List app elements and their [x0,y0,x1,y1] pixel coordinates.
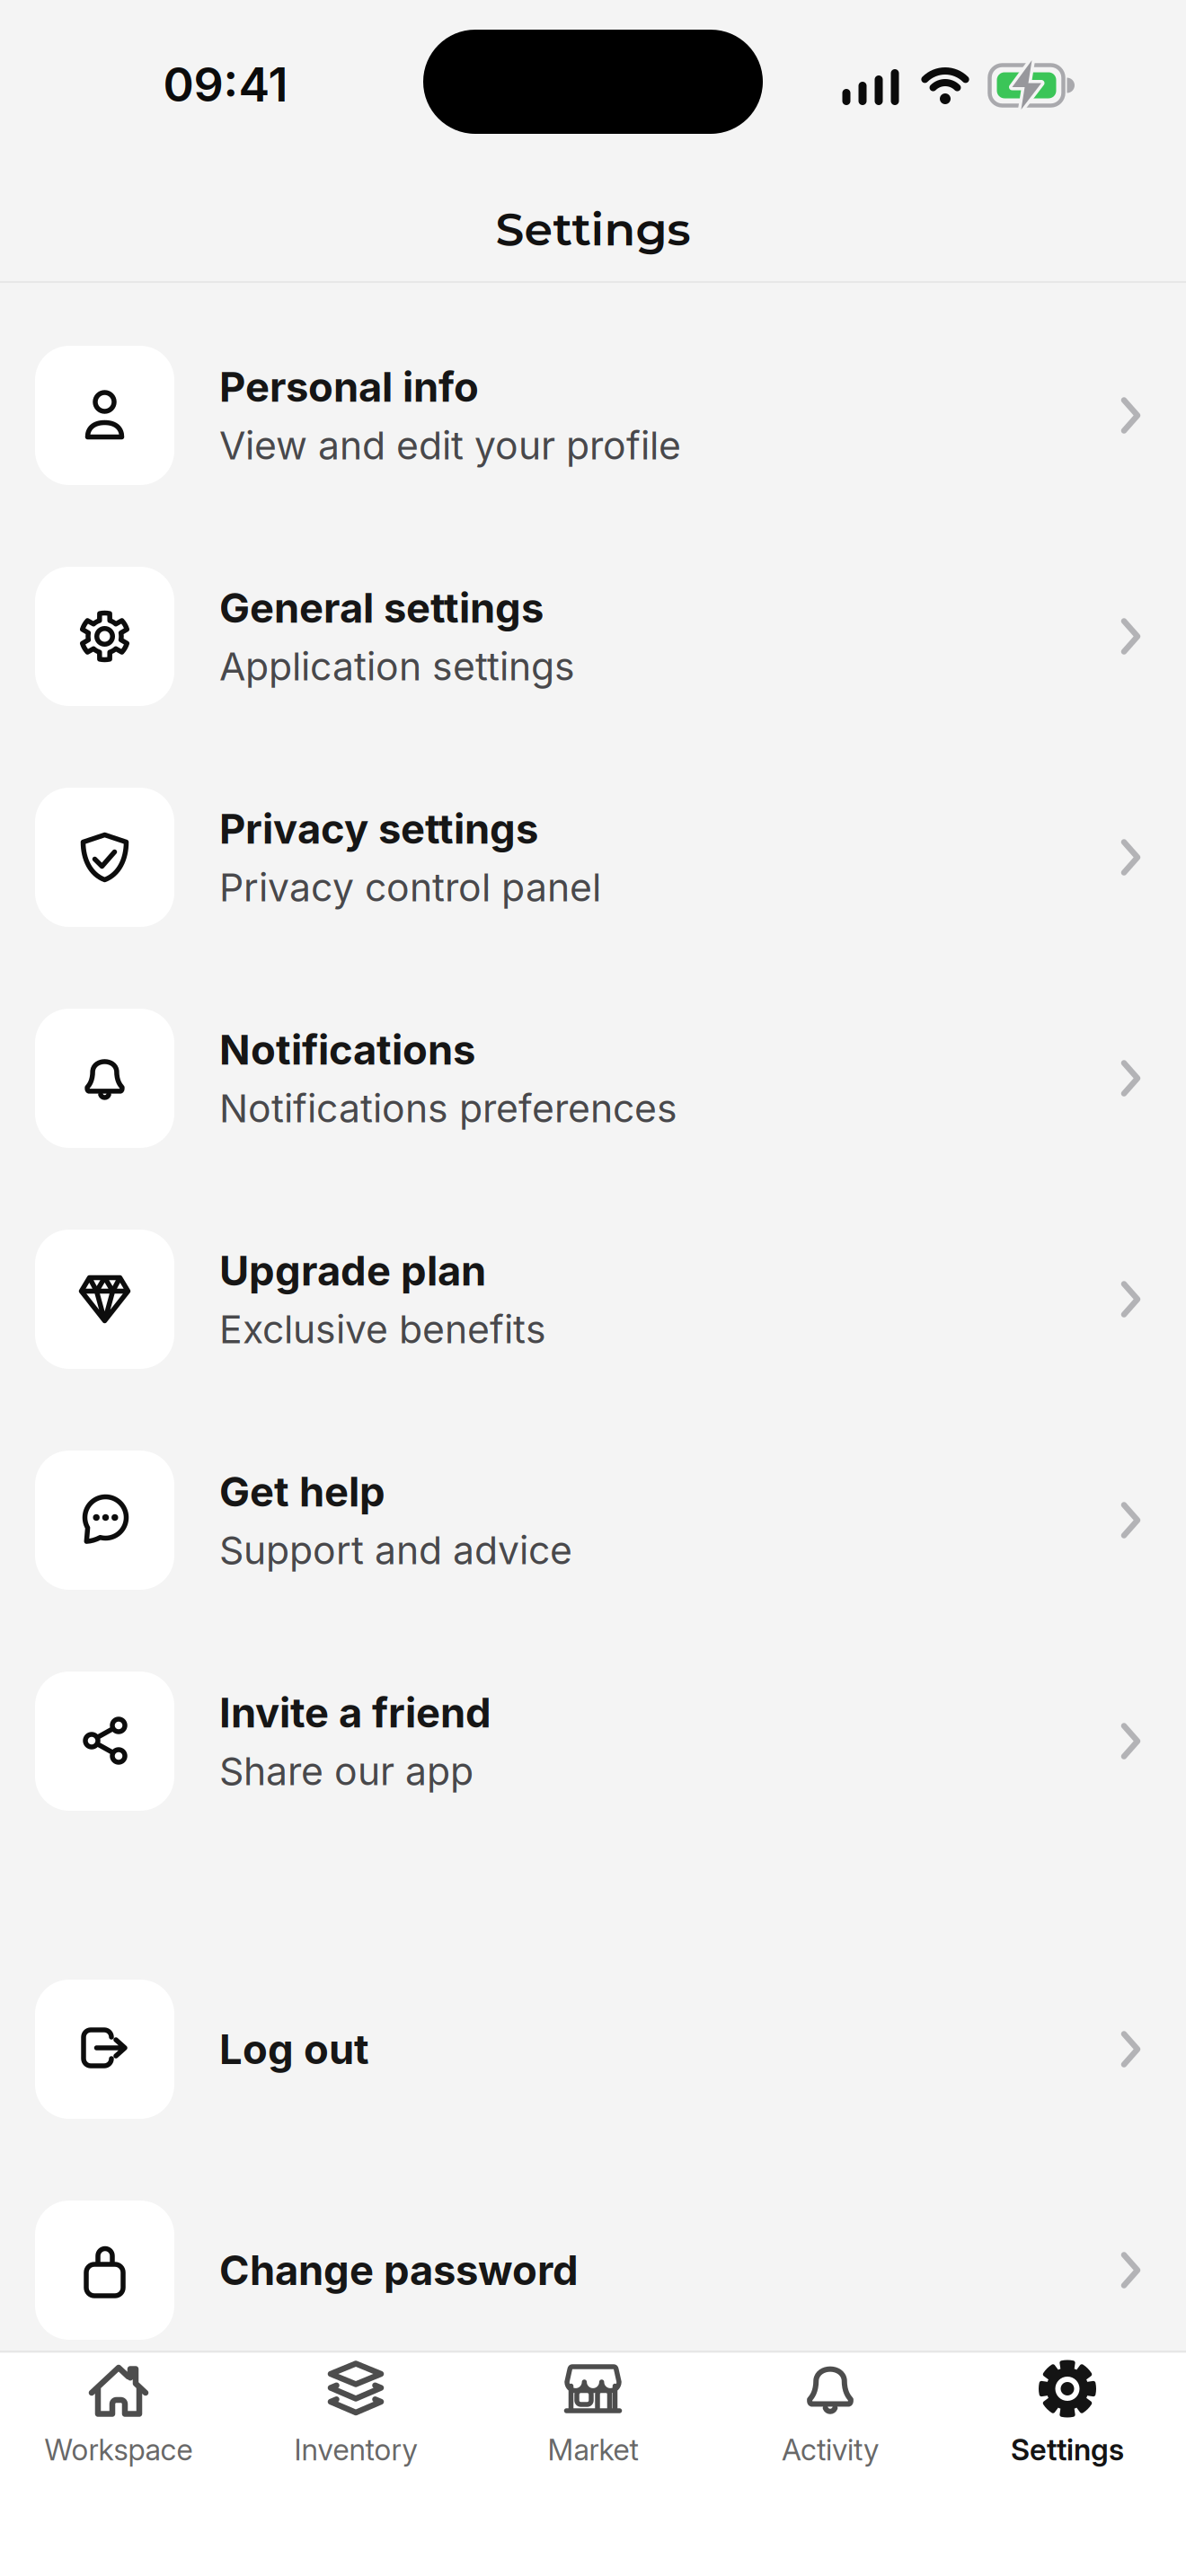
button[interactable]: Inventory [237,2359,474,2569]
staticText: Workspace [44,2432,193,2467]
staticText: Support and advice [219,1527,572,1573]
staticText: Notifications [219,1025,475,1074]
staticText: Exclusive benefits [219,1306,546,1352]
staticText: Share our app [219,1748,474,1794]
staticText: 09:41 [163,56,288,113]
button[interactable]: Notifications [0,1009,1186,1148]
button[interactable]: Settings [949,2359,1186,2569]
staticText: Privacy control panel [219,864,601,910]
staticText: View and edit your profile [219,422,681,469]
button[interactable]: General settings [0,567,1186,706]
button[interactable]: Upgrade plan [0,1230,1186,1369]
staticText: Upgrade plan [219,1246,486,1295]
button[interactable]: Activity [712,2359,949,2569]
staticText: Log out [219,2025,369,2074]
button[interactable]: Log out [0,1980,1186,2119]
staticText: Personal info [219,362,479,412]
staticText: Market [548,2432,638,2467]
staticText: Privacy settings [219,804,538,853]
staticText: General settings [219,583,544,633]
staticText: Application settings [219,643,575,690]
button[interactable]: Workspace [0,2359,237,2569]
staticText: Settings [496,201,690,257]
button[interactable]: Personal info [0,346,1186,485]
staticText: Change password [219,2246,579,2295]
staticText: Invite a friend [219,1688,491,1737]
staticText: Notifications preferences [219,1085,677,1131]
button[interactable]: Change password [0,2201,1186,2340]
staticText: Activity [782,2432,879,2467]
button[interactable]: Privacy settings [0,788,1186,927]
staticText: Get help [219,1467,385,1516]
staticText: Settings [1011,2432,1124,2467]
button[interactable]: Market [474,2359,712,2569]
staticText: Inventory [294,2432,417,2467]
button[interactable]: Invite a friend [0,1672,1186,1811]
button[interactable]: Get help [0,1451,1186,1590]
